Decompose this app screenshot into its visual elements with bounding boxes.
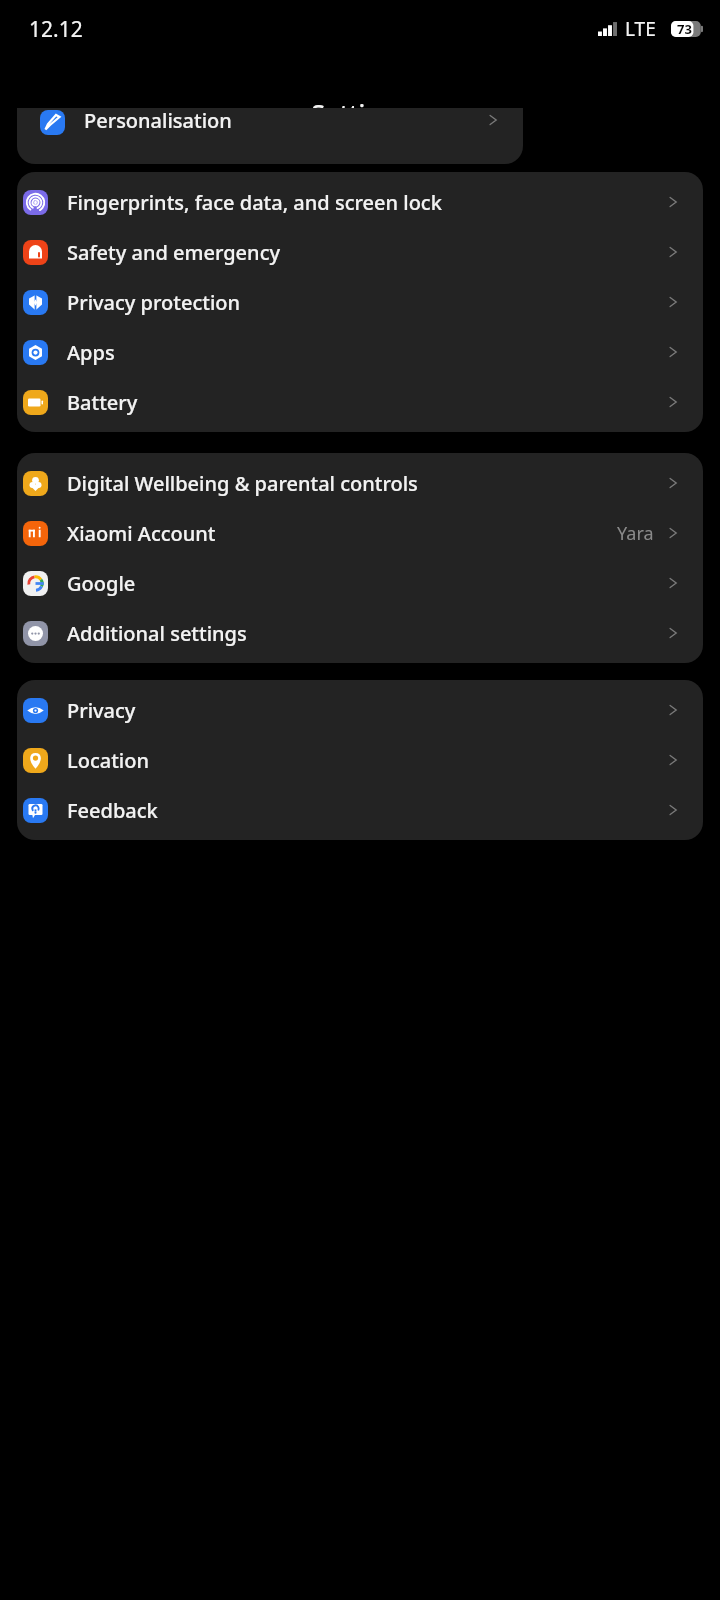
staticText: Google	[67, 570, 657, 597]
button[interactable]: Xiaomi Account	[17, 508, 703, 558]
staticText: 73	[677, 20, 692, 38]
staticText: LTE	[625, 16, 656, 42]
staticText: 12.12	[29, 15, 83, 44]
staticText: Additional settings	[67, 620, 657, 647]
staticText: Privacy	[67, 697, 657, 724]
staticText: Privacy protection	[67, 289, 657, 316]
button[interactable]: Safety and emergency	[17, 227, 703, 277]
button[interactable]: Google	[17, 558, 703, 608]
button[interactable]: Digital Wellbeing & parental controls	[17, 458, 703, 508]
button[interactable]: Location	[17, 735, 703, 785]
button[interactable]: Personalisation	[17, 108, 523, 164]
button[interactable]: Fingerprints, face data, and screen lock	[17, 177, 703, 227]
staticText: Personalisation	[84, 108, 232, 134]
button[interactable]: Battery	[17, 377, 703, 427]
staticText: Safety and emergency	[67, 239, 657, 266]
button[interactable]: Additional settings	[17, 608, 703, 658]
button[interactable]: Privacy	[17, 685, 703, 735]
button[interactable]: Feedback	[17, 785, 703, 835]
staticText: Fingerprints, face data, and screen lock	[67, 189, 657, 216]
button[interactable]: Privacy protection	[17, 277, 703, 327]
staticText: Location	[67, 747, 657, 774]
staticText: Digital Wellbeing & parental controls	[67, 470, 657, 497]
staticText: Feedback	[67, 797, 657, 824]
staticText: Apps	[67, 339, 657, 366]
staticText: Yara	[617, 521, 654, 546]
button[interactable]: Apps	[17, 327, 703, 377]
staticText: Battery	[67, 389, 657, 416]
staticText: Settings	[0, 96, 720, 130]
staticText: Xiaomi Account	[67, 520, 609, 547]
